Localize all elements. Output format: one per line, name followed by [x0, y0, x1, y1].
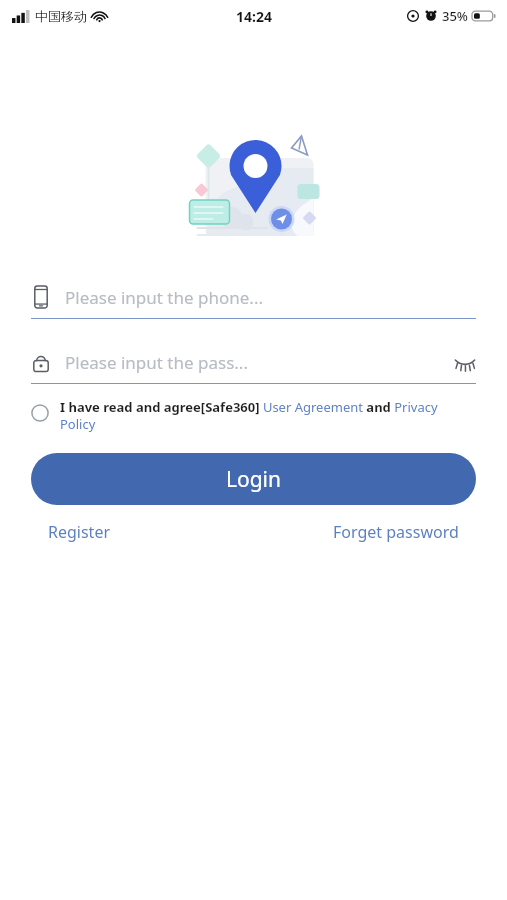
staticText: Please input the pass... [65, 351, 454, 374]
staticText: I have read and agree[Safe360] User Agre… [60, 398, 476, 433]
staticText: 35% [442, 7, 468, 25]
button[interactable]: Register [44, 515, 115, 549]
staticText: 14:24 [236, 7, 272, 26]
other: Password [31, 350, 51, 374]
other: Agree to terms [31, 404, 49, 422]
button[interactable]: Show password [454, 354, 476, 370]
button[interactable]: Forget password [329, 515, 463, 549]
button[interactable]: Agree to terms [31, 398, 476, 433]
staticText: Please input the phone... [65, 286, 476, 309]
other: Phone number [31, 285, 51, 309]
staticText: Register [48, 521, 111, 543]
staticText: Login [226, 465, 282, 494]
staticText: Forget password [333, 521, 459, 543]
button[interactable]: Login [31, 453, 476, 505]
staticText: 中国移动 [35, 8, 87, 24]
button[interactable]: Password [31, 343, 476, 384]
button[interactable]: Phone number [31, 278, 476, 319]
